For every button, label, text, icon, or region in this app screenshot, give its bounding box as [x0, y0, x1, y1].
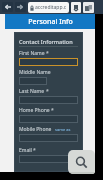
staticText: First Name	[19, 50, 45, 57]
button[interactable]: Search	[68, 150, 95, 174]
staticText: Email	[19, 147, 32, 154]
button[interactable]: Tabs	[83, 2, 94, 13]
button[interactable]: Back	[2, 2, 13, 12]
button[interactable]: Personal Info	[5, 14, 95, 29]
staticText: *	[33, 147, 36, 154]
staticText: *	[46, 88, 49, 95]
button[interactable]	[19, 134, 78, 142]
staticText: Middle Name	[19, 69, 51, 76]
staticText: Contact Information	[19, 38, 73, 45]
button[interactable]: accreditapp.c	[28, 2, 69, 13]
button[interactable]: Forward	[15, 2, 26, 12]
staticText: Personal Info	[28, 17, 73, 27]
button[interactable]	[19, 115, 78, 123]
staticText: Mobile Phone	[19, 126, 52, 133]
button[interactable]	[19, 77, 47, 85]
staticText: Last Name	[19, 88, 45, 95]
button[interactable]	[19, 155, 78, 163]
button[interactable]: same as home	[55, 127, 78, 132]
staticText: Home Phone	[19, 107, 50, 114]
staticText: accreditapp.c	[35, 4, 67, 11]
button[interactable]: Bookmark	[71, 2, 81, 13]
button[interactable]	[19, 58, 78, 66]
staticText: *	[51, 107, 54, 114]
button[interactable]	[19, 96, 78, 104]
staticText: same as home	[55, 127, 78, 132]
staticText: *	[46, 50, 49, 57]
